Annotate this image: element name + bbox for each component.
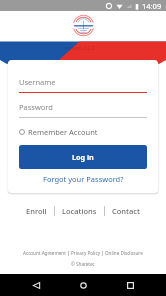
button[interactable]: Username: [19, 77, 147, 93]
staticText: Password: [19, 102, 53, 112]
staticText: Username: [19, 77, 56, 87]
button[interactable]: Privacy Policy: [69, 250, 102, 256]
staticText: Remember Account: [28, 127, 98, 137]
button[interactable]: Password: [19, 102, 147, 118]
button[interactable]: Back: [25, 274, 47, 296]
button[interactable]: Online Disclosure: [103, 250, 145, 256]
staticText: Version 3.2.2: [64, 45, 95, 52]
button[interactable]: Log in: [19, 145, 147, 169]
button[interactable]: Forgot your Password?: [43, 174, 124, 184]
button[interactable]: Enroll: [19, 204, 54, 218]
button[interactable]: Locations: [55, 204, 104, 218]
staticText: 14:09: [142, 1, 162, 11]
button[interactable]: Contact: [105, 204, 147, 218]
button[interactable]: Account Agreement: [21, 250, 68, 256]
button[interactable]: Recent apps: [119, 274, 141, 296]
button[interactable]: Home: [72, 274, 94, 296]
button[interactable]: Remember Account: [19, 126, 98, 138]
staticText: Log in: [72, 152, 94, 162]
staticText: © Sharetec: [71, 261, 95, 267]
